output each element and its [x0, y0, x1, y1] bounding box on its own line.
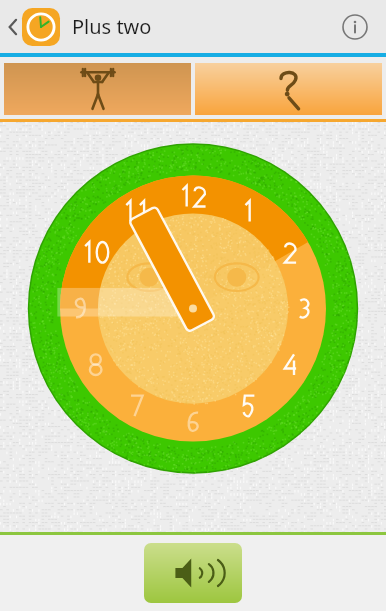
- staticText: Plus two: [72, 13, 152, 40]
- button[interactable]: Back: [0, 4, 62, 50]
- button[interactable]: Quiz: [195, 63, 382, 115]
- button[interactable]: Practice: [4, 63, 191, 115]
- button[interactable]: Play sound: [144, 543, 242, 603]
- button[interactable]: Info: [338, 10, 372, 44]
